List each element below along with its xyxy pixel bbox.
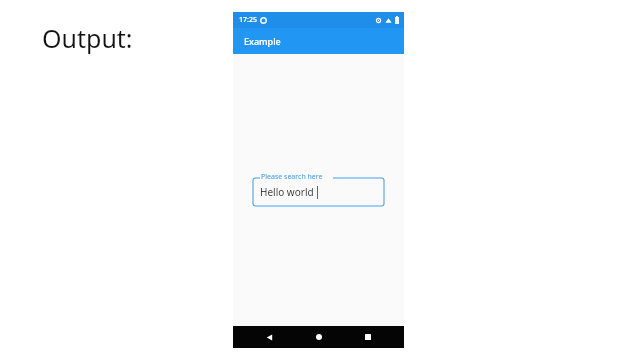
button[interactable]: Recent apps — [355, 326, 381, 348]
staticText: Please search here — [261, 172, 323, 182]
staticText: Output: — [42, 21, 133, 55]
button[interactable]: Example — [233, 28, 404, 54]
staticText: Hello world — [260, 185, 314, 199]
staticText: Example — [244, 35, 281, 47]
button[interactable]: Please search here — [253, 172, 384, 206]
button[interactable]: Home — [306, 326, 332, 348]
staticText: 17:25 — [239, 15, 257, 25]
button[interactable]: Back — [256, 326, 282, 348]
